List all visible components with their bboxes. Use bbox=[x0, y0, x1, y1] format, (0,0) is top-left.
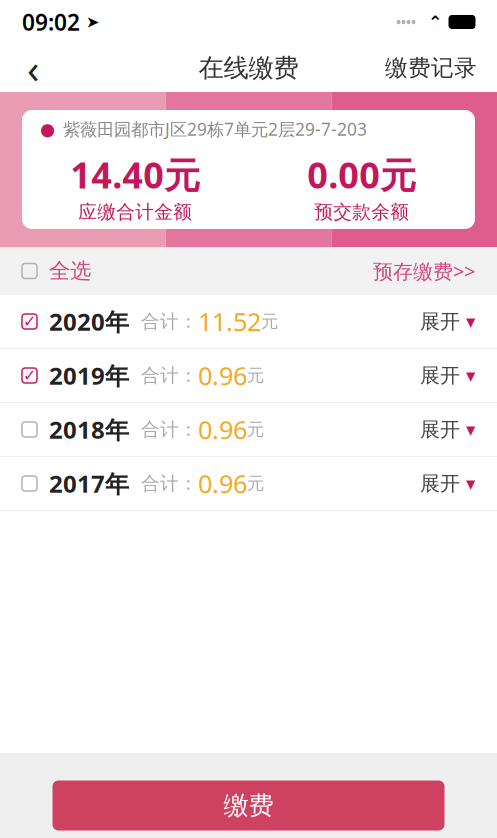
staticText: ✓ bbox=[23, 366, 36, 385]
staticText: 2019年 bbox=[43, 360, 129, 391]
staticText: ⌃ bbox=[416, 12, 449, 32]
button[interactable] bbox=[0, 457, 497, 511]
staticText: 09:02 bbox=[22, 7, 80, 37]
button[interactable]: 缴费记录 bbox=[375, 45, 487, 91]
staticText: 合计： bbox=[135, 418, 198, 441]
staticText: 合计： bbox=[135, 472, 198, 495]
staticText: 元 bbox=[247, 365, 264, 386]
staticText: 展开 bbox=[420, 309, 460, 334]
staticText: ➤ bbox=[80, 13, 99, 31]
staticText: 2017年 bbox=[43, 468, 129, 499]
staticText: ● bbox=[40, 119, 55, 139]
staticText: 全选 bbox=[49, 258, 91, 284]
button[interactable] bbox=[0, 403, 497, 457]
staticText: 0.00元 bbox=[307, 151, 416, 198]
staticText: 预交款余额 bbox=[314, 200, 409, 223]
staticText: 0.96 bbox=[198, 413, 247, 446]
staticText: 在线缴费 bbox=[198, 52, 298, 83]
button[interactable]: 返回 bbox=[10, 45, 56, 91]
staticText: 0.96 bbox=[198, 467, 247, 500]
staticText: ▾ bbox=[460, 473, 475, 494]
staticText: 展开 bbox=[420, 363, 460, 388]
staticText: ▾ bbox=[460, 365, 475, 386]
staticText: 缴费记录 bbox=[385, 54, 477, 82]
staticText: •••• bbox=[396, 13, 416, 31]
staticText: 缴费 bbox=[223, 790, 273, 821]
staticText: ‹ bbox=[27, 41, 39, 94]
staticText: 预存缴费>> bbox=[373, 258, 475, 284]
staticText: 2020年 bbox=[43, 306, 129, 337]
button[interactable]: ✓ bbox=[0, 295, 497, 349]
staticText: ▾ bbox=[460, 419, 475, 440]
button[interactable] bbox=[0, 247, 113, 295]
staticText: 合计： bbox=[135, 364, 198, 387]
staticText: 展开 bbox=[420, 471, 460, 496]
staticText: 14.40元 bbox=[70, 151, 200, 198]
button[interactable]: ✓ bbox=[0, 349, 497, 403]
staticText: ✓ bbox=[23, 312, 36, 331]
staticText: 应缴合计金额 bbox=[78, 200, 192, 223]
staticText: 0.96 bbox=[198, 359, 247, 392]
button[interactable]: 缴费 bbox=[52, 780, 444, 830]
button[interactable]: 预存缴费>> bbox=[351, 247, 497, 295]
staticText: 2018年 bbox=[43, 414, 129, 445]
staticText: 11.52 bbox=[198, 305, 261, 338]
staticText: 元 bbox=[247, 419, 264, 440]
staticText: 展开 bbox=[420, 417, 460, 442]
staticText: 元 bbox=[247, 473, 264, 494]
staticText: 元 bbox=[261, 311, 278, 332]
staticText: 合计： bbox=[135, 310, 198, 333]
staticText: ▾ bbox=[460, 311, 475, 332]
staticText: 紫薇田园都市J区29栋7单元2层29-7-203 bbox=[63, 118, 367, 141]
